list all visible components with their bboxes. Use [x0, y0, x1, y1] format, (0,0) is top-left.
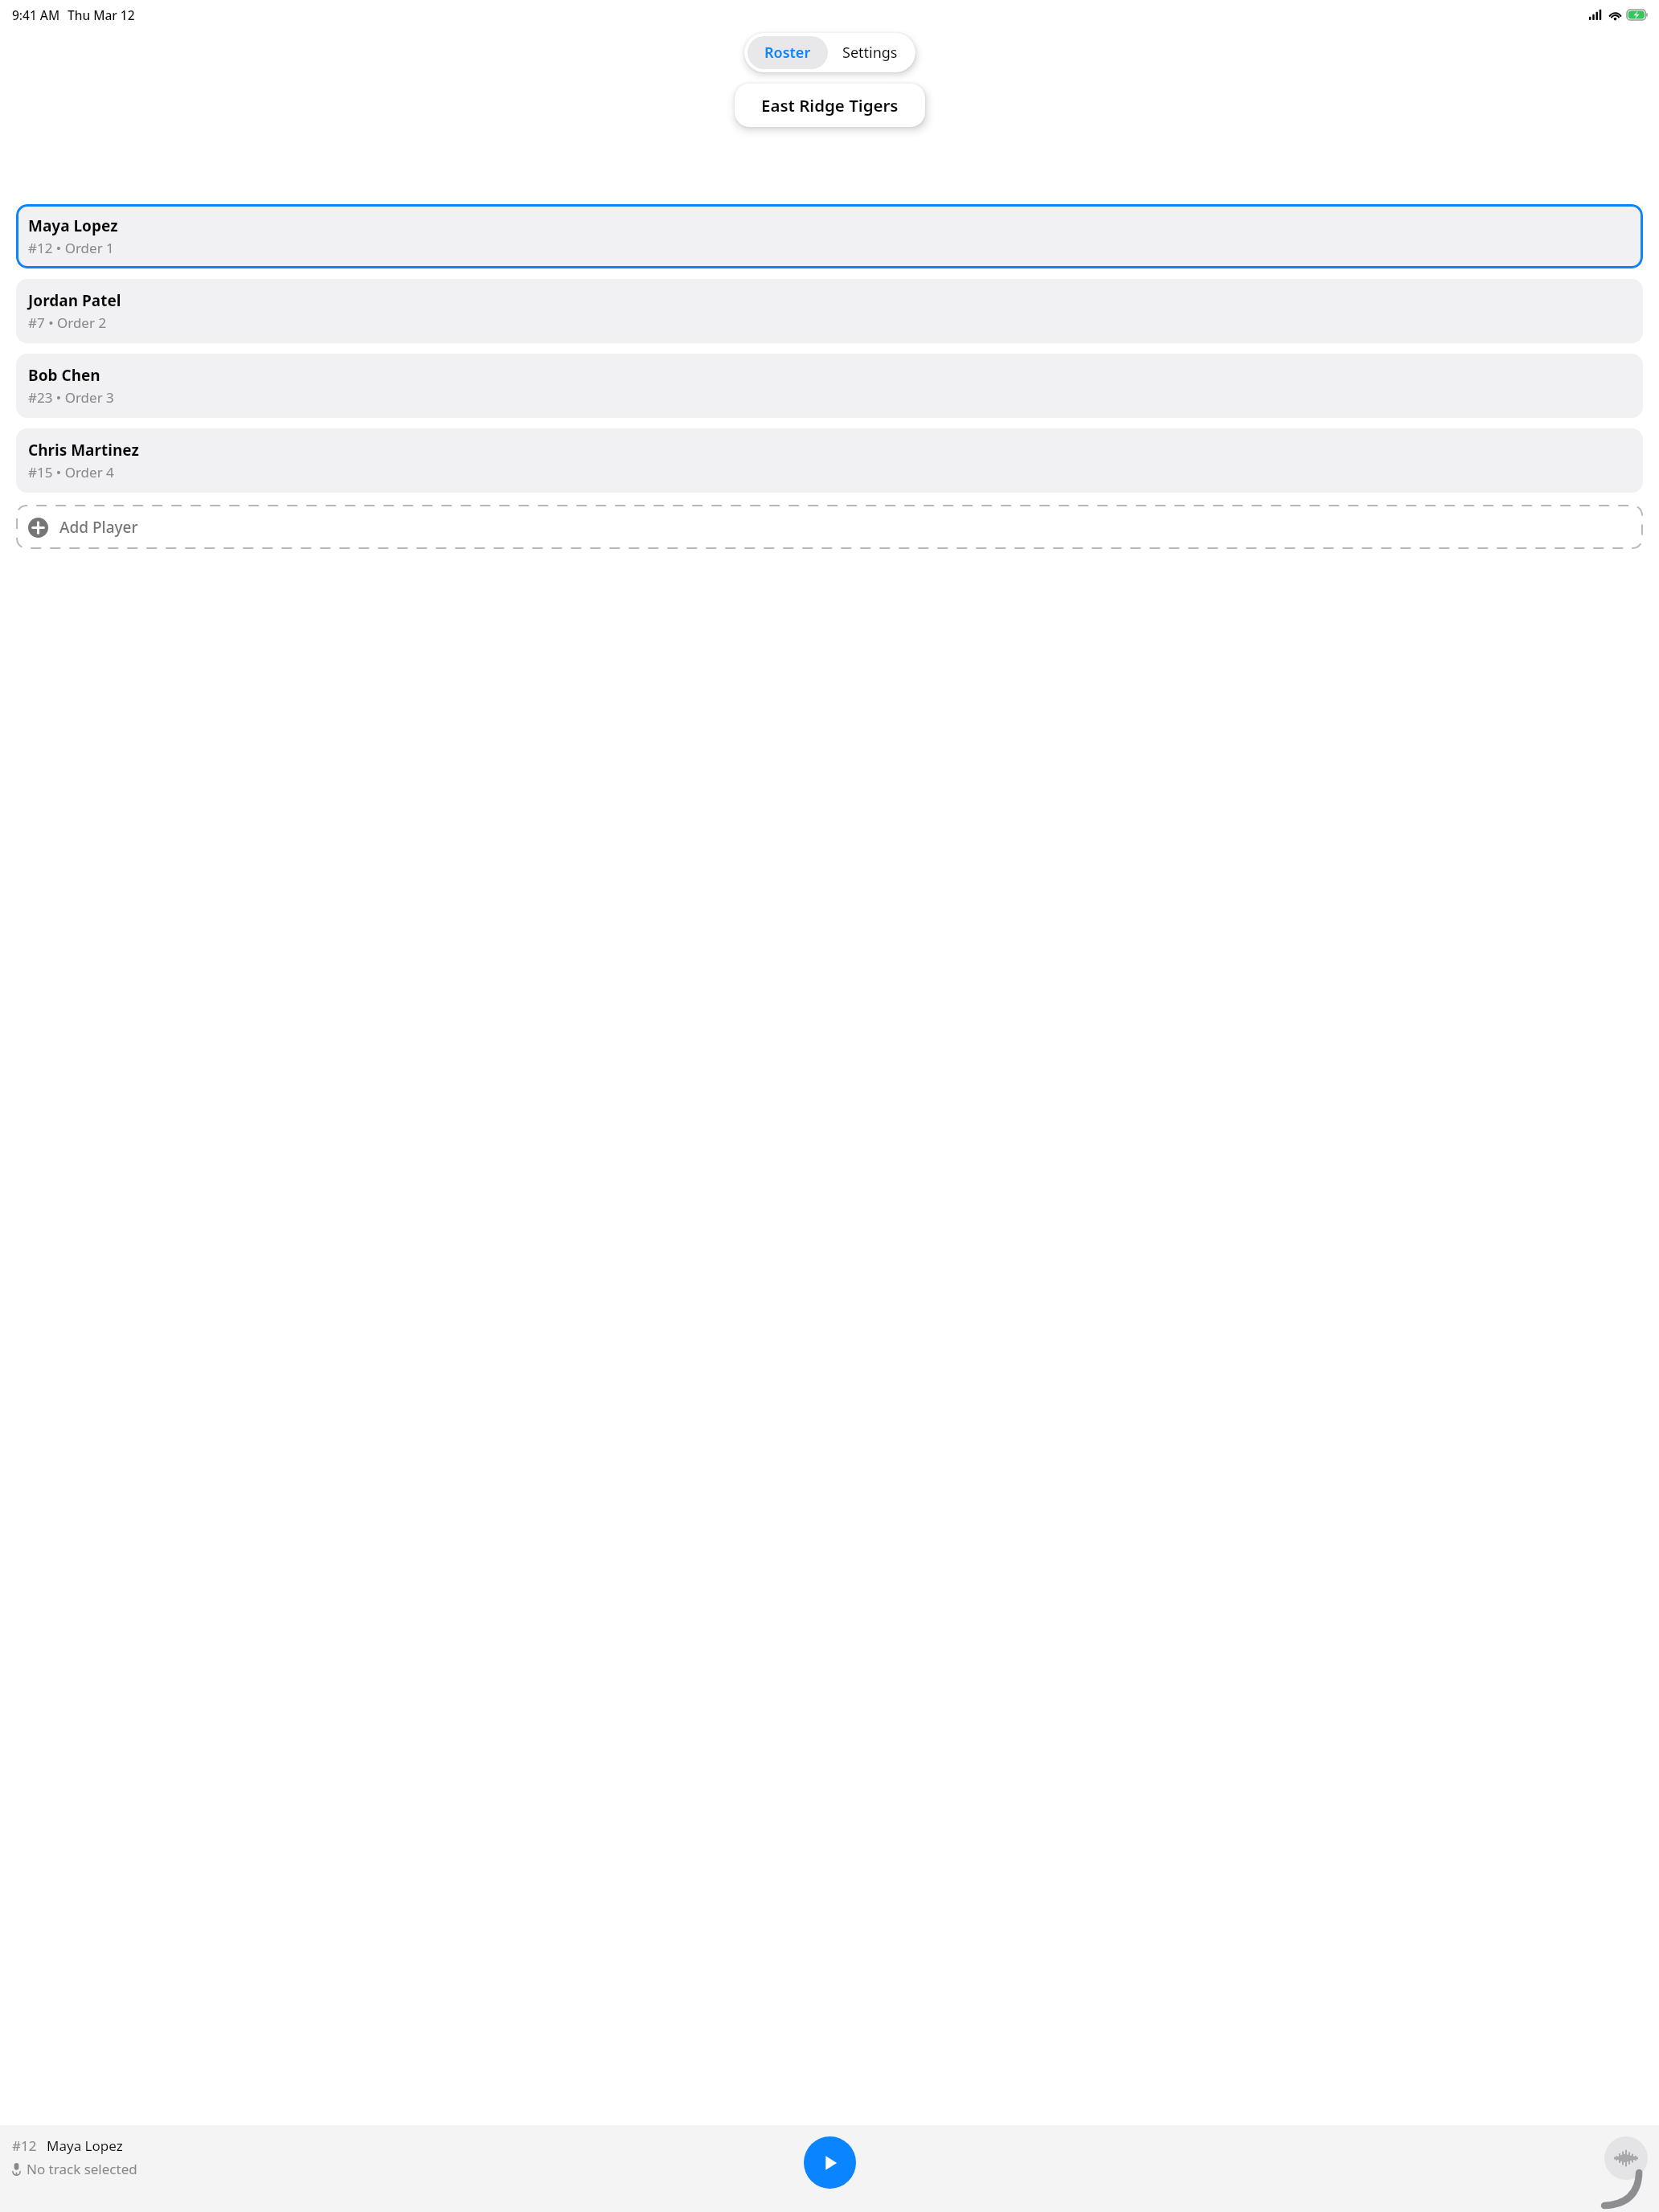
staticText: Settings [842, 43, 898, 63]
staticText: #12 [12, 2136, 37, 2155]
button[interactable]: Settings [828, 36, 912, 69]
button[interactable]: Add Player [16, 505, 1643, 549]
staticText: 9:41 AM [12, 6, 60, 23]
button[interactable]: Jordan Patel [16, 279, 1643, 343]
staticText: #7 • Order 2 [28, 313, 107, 332]
staticText: Roster [764, 43, 811, 63]
staticText: Bob Chen [28, 365, 100, 386]
staticText: Maya Lopez [47, 2136, 123, 2155]
button[interactable]: Chris Martinez [16, 428, 1643, 493]
staticText: Add Player [59, 517, 138, 538]
button[interactable]: Roster [748, 36, 828, 69]
button[interactable]: Maya Lopez [16, 204, 1643, 268]
staticText: Chris Martinez [28, 440, 139, 461]
staticText: Jordan Patel [28, 290, 121, 311]
staticText: Thu Mar 12 [68, 6, 135, 23]
staticText: Maya Lopez [28, 215, 118, 236]
button[interactable]: Waveform [1604, 2136, 1648, 2180]
button[interactable]: East Ridge Tigers [735, 84, 925, 127]
button[interactable]: Bob Chen [16, 354, 1643, 418]
staticText: East Ridge Tigers [761, 94, 899, 117]
staticText: #12 • Order 1 [28, 239, 114, 257]
staticText: #23 • Order 3 [28, 388, 114, 407]
button[interactable]: Play [804, 2136, 856, 2189]
staticText: #15 • Order 4 [28, 463, 114, 481]
staticText: No track selected [27, 2160, 137, 2178]
